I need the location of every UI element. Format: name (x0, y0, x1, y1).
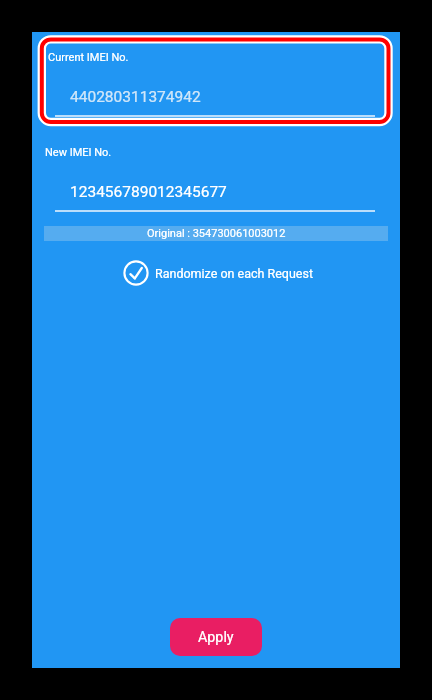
staticText: New IMEI No. (45, 146, 112, 159)
button[interactable] (42, 42, 390, 120)
button[interactable]: Original : 354730061003012 (44, 226, 388, 241)
staticText: 123456789012345677 (70, 183, 227, 201)
staticText: Original : 354730061003012 (147, 227, 286, 240)
staticText: Current IMEI No. (48, 51, 129, 64)
staticText: Apply (198, 629, 234, 646)
other: Randomize on each Request (123, 260, 149, 286)
staticText: 440280311374942 (70, 88, 201, 106)
button[interactable]: Randomize on each Request (123, 260, 314, 286)
button[interactable]: Apply (170, 618, 262, 656)
button[interactable] (42, 137, 390, 213)
staticText: Randomize on each Request (155, 266, 314, 281)
